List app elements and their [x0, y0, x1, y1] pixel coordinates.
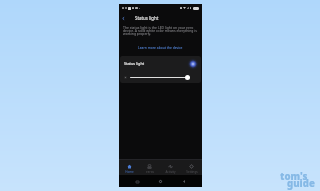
button[interactable]: Status light [124, 56, 199, 71]
staticText: Learn more about the device [138, 45, 183, 49]
staticText: Status light [135, 15, 159, 21]
button[interactable]: Settings [181, 161, 202, 174]
button[interactable]: Back [119, 14, 128, 23]
staticText: tom's [280, 170, 308, 183]
staticText: Settings [186, 170, 198, 174]
button[interactable]: Home [119, 161, 139, 174]
staticText: Status light [124, 61, 145, 66]
button[interactable]: Activity [160, 161, 181, 174]
button[interactable]: Home [156, 177, 165, 186]
button[interactable]: Back [179, 177, 188, 186]
staticText: Activity [165, 170, 176, 174]
staticText: Home [125, 170, 134, 174]
button[interactable]: eeros [139, 161, 160, 174]
button[interactable]: Status light toggle [187, 58, 199, 70]
button[interactable]: Learn more about the device [123, 44, 198, 49]
button[interactable]: Recent apps [133, 177, 142, 186]
staticText: The status light is the LED light on you… [123, 25, 198, 36]
staticText: eeros [146, 170, 154, 174]
staticText: guide [287, 177, 315, 190]
